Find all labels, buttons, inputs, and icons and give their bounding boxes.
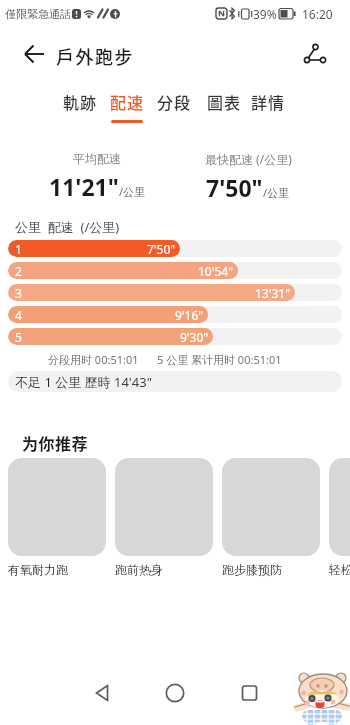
staticText: 1	[15, 241, 22, 257]
staticText: 5	[15, 329, 22, 345]
staticText: 軌跡	[63, 90, 98, 113]
staticText: /公里	[263, 185, 290, 200]
staticText: 3	[15, 285, 22, 301]
button[interactable]	[115, 458, 213, 556]
staticText: 圖表	[207, 90, 242, 113]
staticText: 13'31"	[255, 285, 291, 301]
staticText: 9'30"	[180, 329, 209, 345]
staticText: 16:20	[302, 6, 333, 22]
staticText: 4	[15, 307, 22, 323]
staticText: 有氧耐力跑	[8, 562, 68, 577]
staticText: 39%	[253, 6, 277, 22]
button[interactable]: 圖表	[200, 87, 248, 124]
staticText: 7'50"	[147, 241, 176, 257]
staticText: 詳情	[251, 90, 286, 113]
staticText: 11'21"	[49, 171, 119, 202]
button[interactable]: 3	[8, 284, 342, 301]
staticText: 分段用时 00:51:01	[48, 352, 139, 367]
button[interactable]: 2	[8, 262, 342, 279]
staticText: /公里	[119, 184, 146, 199]
button[interactable]: 5	[8, 328, 342, 345]
staticText: 轻松跑	[329, 562, 350, 577]
staticText: 10'54"	[198, 263, 234, 279]
button[interactable]: 1	[8, 240, 342, 257]
staticText: 7'50"	[206, 172, 263, 203]
staticText: 平均配速	[73, 151, 121, 166]
button[interactable]	[85, 678, 125, 712]
button[interactable]: 4	[8, 306, 342, 323]
staticText: 戶外跑步	[56, 43, 134, 69]
staticText: 跑步膝预防	[222, 562, 282, 577]
staticText: 为你推荐	[22, 431, 89, 454]
button[interactable]: 分段	[150, 87, 198, 124]
button[interactable]: 不足 1 公里 歷時 14'43"	[8, 371, 342, 392]
staticText: 9'16"	[175, 307, 204, 323]
staticText: 僅限緊急通話	[5, 7, 71, 21]
staticText: 分段	[157, 90, 192, 113]
button[interactable]	[225, 678, 265, 712]
staticText: 2	[15, 263, 22, 279]
button[interactable]	[155, 678, 195, 712]
staticText: 最快配速 (/公里)	[205, 151, 292, 167]
button[interactable]	[222, 458, 320, 556]
staticText: 配速	[110, 90, 145, 113]
staticText: 公里 配速 (/公里)	[15, 218, 120, 236]
button[interactable]: 軌跡	[56, 87, 104, 124]
staticText: 不足 1 公里 歷時 14'43"	[15, 373, 152, 391]
button[interactable]	[12, 40, 52, 80]
button[interactable]: 配速	[103, 87, 151, 124]
staticText: 5 公里 累计用时 00:51:01	[157, 352, 282, 367]
button[interactable]: 詳情	[244, 87, 292, 124]
staticText: 跑前热身	[115, 562, 163, 577]
button[interactable]	[8, 458, 106, 556]
button[interactable]	[329, 458, 350, 556]
button[interactable]	[295, 40, 335, 80]
